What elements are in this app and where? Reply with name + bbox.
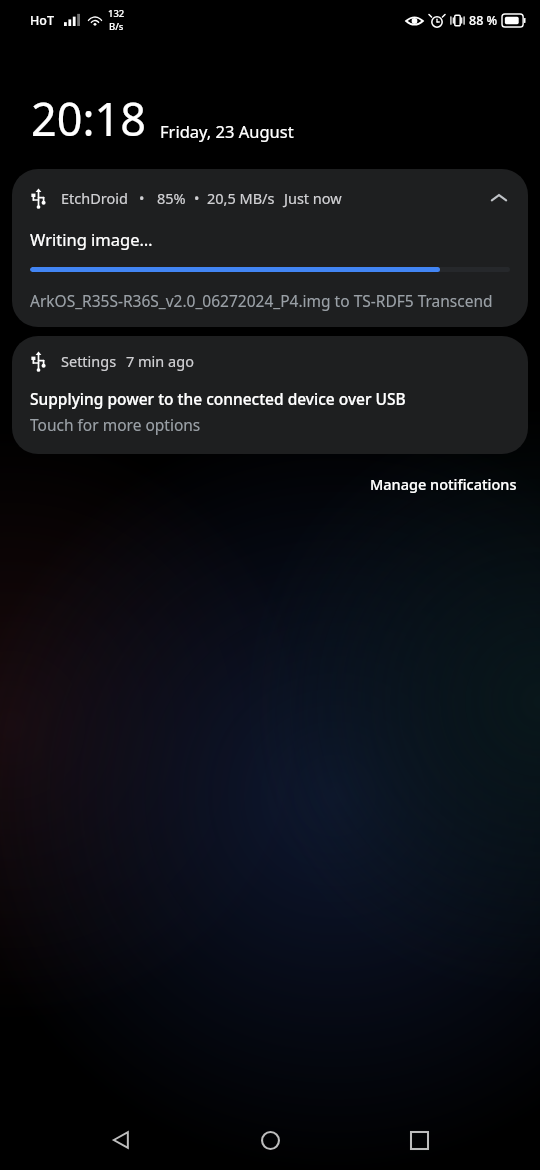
staticText: 20:18 bbox=[31, 88, 147, 149]
staticText: • bbox=[139, 188, 145, 208]
staticText: HoT bbox=[30, 12, 55, 29]
staticText: • bbox=[194, 188, 200, 208]
staticText: Writing image… bbox=[30, 228, 153, 250]
staticText: ArkOS_R35S-R36S_v2.0_06272024_P4.img to … bbox=[30, 290, 493, 311]
staticText: 20,5 MB/s bbox=[207, 188, 275, 208]
button[interactable]: Recent apps bbox=[391, 1112, 447, 1168]
staticText: B/s bbox=[109, 20, 124, 33]
staticText: 132 bbox=[108, 7, 125, 20]
button[interactable]: EtchDroid bbox=[12, 169, 528, 327]
staticText: Just now bbox=[284, 188, 342, 208]
button[interactable]: Manage notifications bbox=[362, 468, 525, 500]
staticText: Supplying power to the connected device … bbox=[30, 388, 406, 409]
staticText: Manage notifications bbox=[370, 474, 517, 494]
staticText: Touch for more options bbox=[30, 414, 201, 435]
button[interactable]: Settings bbox=[12, 336, 528, 454]
staticText: EtchDroid bbox=[61, 188, 128, 208]
staticText: 7 min ago bbox=[126, 351, 194, 371]
staticText: 85% bbox=[157, 188, 186, 208]
button[interactable]: Back bbox=[93, 1112, 149, 1168]
button[interactable]: Home bbox=[242, 1112, 298, 1168]
staticText: Friday, 23 August bbox=[160, 120, 294, 142]
staticText: 88 % bbox=[469, 12, 498, 29]
staticText: Settings bbox=[61, 351, 117, 371]
button[interactable]: Collapse notification bbox=[484, 183, 514, 213]
